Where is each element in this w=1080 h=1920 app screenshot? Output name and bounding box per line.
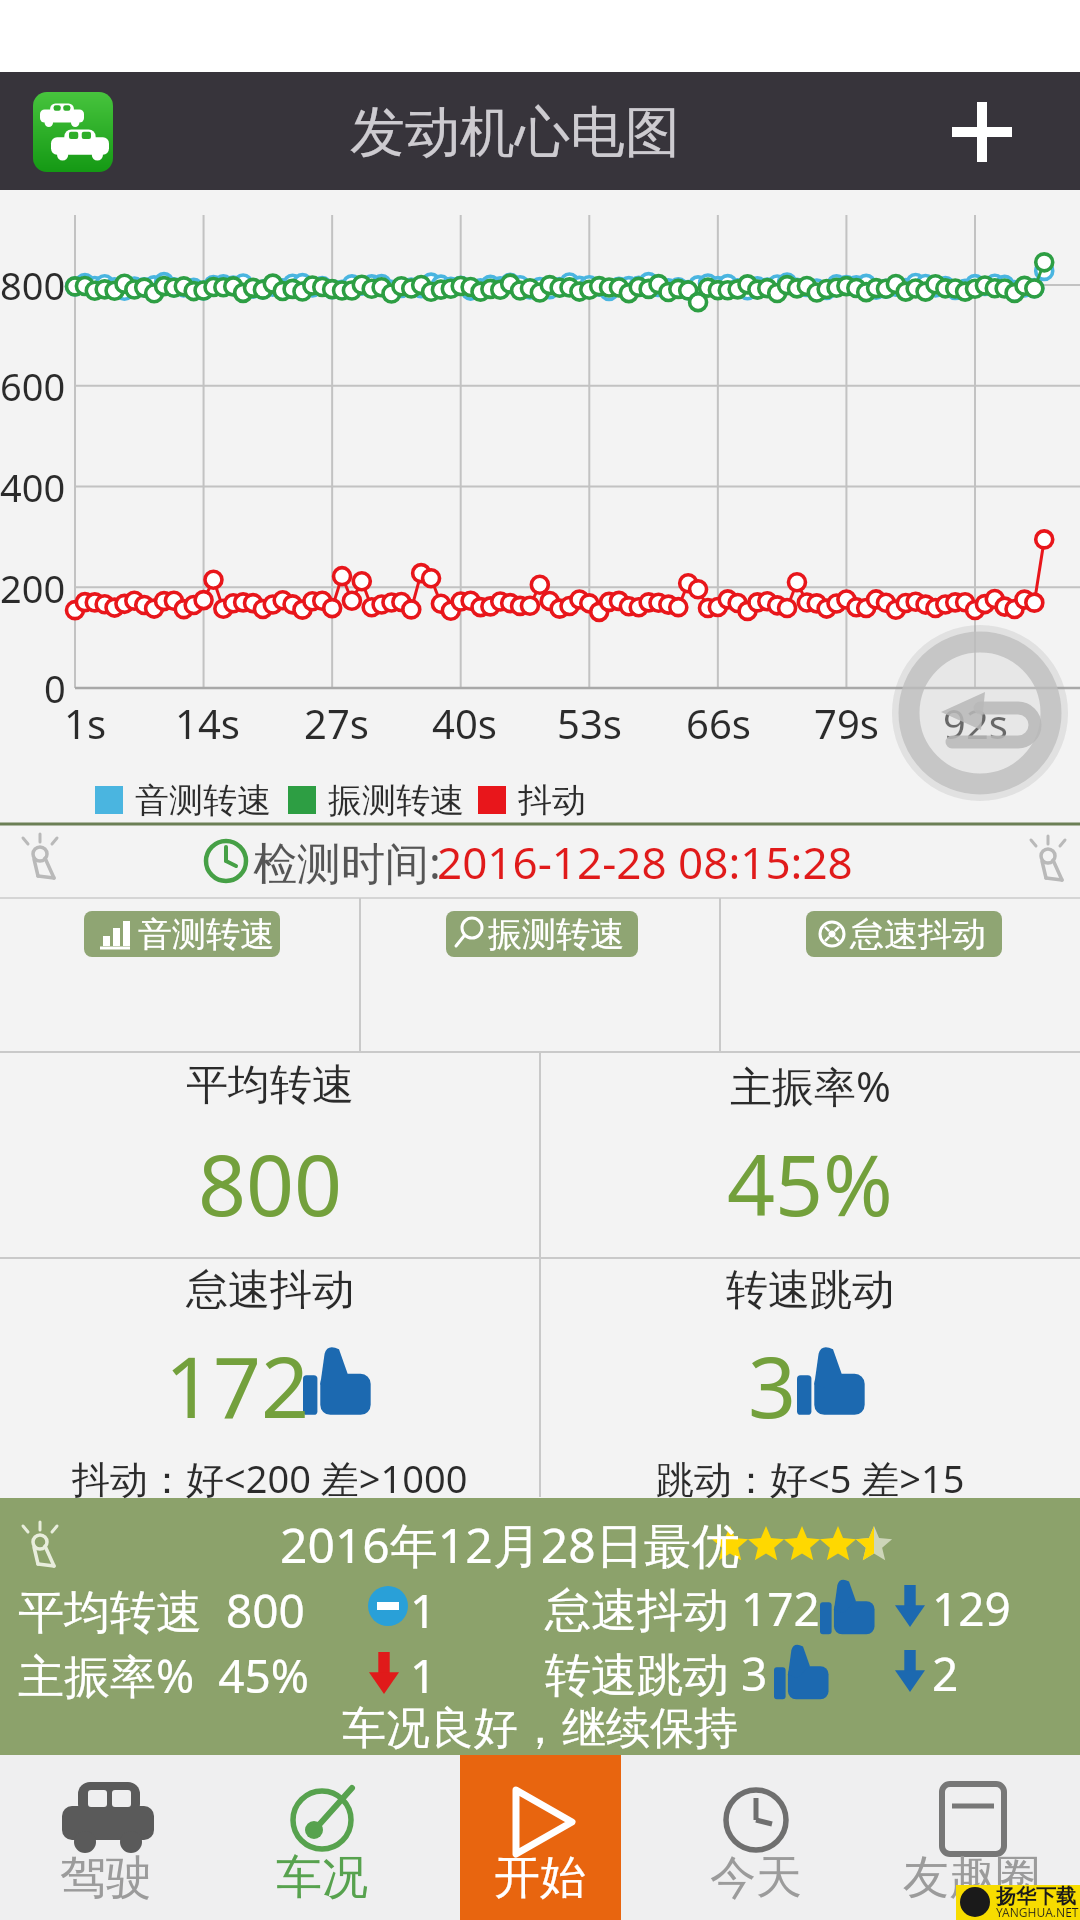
staticText: 发动机心电图: [350, 98, 680, 167]
button[interactable]: [84, 911, 280, 957]
staticText: 怠速抖动: [186, 1264, 354, 1317]
staticText: 抖动：好<200 差>1000: [72, 1452, 468, 1504]
staticText: 检测时间:: [253, 832, 441, 892]
staticText: 172: [165, 1328, 310, 1442]
button[interactable]: [900, 624, 1076, 800]
staticText: 40s: [432, 696, 497, 750]
staticText: 怠速抖动: [850, 913, 986, 956]
button[interactable]: [460, 1755, 621, 1920]
button[interactable]: [33, 92, 113, 172]
staticText: 53s: [557, 696, 622, 750]
staticText: 1: [410, 1644, 437, 1707]
staticText: 音测转速: [135, 779, 271, 822]
staticText: 3: [748, 1328, 797, 1442]
staticText: 开始: [494, 1849, 586, 1907]
staticText: 400: [0, 461, 66, 513]
staticText: 振测转速: [488, 913, 624, 956]
button[interactable]: [940, 90, 1024, 174]
staticText: 振测转速: [328, 779, 464, 822]
staticText: 驾驶: [60, 1849, 152, 1907]
staticText: YANGHUA.NET: [996, 1904, 1079, 1920]
staticText: 45%: [727, 1126, 893, 1240]
staticText: 音测转速: [138, 913, 274, 956]
staticText: 友趣圈: [903, 1849, 1041, 1907]
staticText: 2016-12-28 08:15:28: [437, 832, 853, 892]
staticText: 转速跳动 3: [545, 1642, 768, 1705]
staticText: 车况: [276, 1849, 368, 1907]
staticText: 主振率%: [730, 1057, 891, 1114]
button[interactable]: [0, 1755, 216, 1920]
staticText: 转速跳动: [726, 1264, 894, 1317]
staticText: 800: [0, 259, 66, 311]
button[interactable]: [806, 911, 1002, 957]
staticText: 600: [0, 360, 66, 412]
staticText: 0: [44, 662, 66, 714]
staticText: 200: [0, 562, 66, 614]
staticText: 2: [932, 1642, 959, 1705]
staticText: 800: [198, 1126, 343, 1240]
staticText: 今天: [710, 1849, 802, 1907]
button[interactable]: [446, 911, 638, 957]
staticText: 1s: [64, 696, 107, 750]
staticText: 主振率% 45%: [18, 1644, 309, 1707]
staticText: 扬华下载: [996, 1884, 1076, 1909]
staticText: 抖动: [518, 779, 586, 822]
staticText: 跳动：好<5 差>15: [656, 1452, 965, 1504]
staticText: 92s: [943, 696, 1008, 750]
button[interactable]: [864, 1755, 1080, 1920]
staticText: 平均转速: [186, 1059, 354, 1112]
staticText: 2016年12月28日最优: [280, 1512, 740, 1578]
staticText: 平均转速 800: [18, 1579, 305, 1642]
staticText: 27s: [304, 696, 369, 750]
staticText: 14s: [175, 696, 240, 750]
staticText: 1: [410, 1579, 437, 1642]
staticText: 车况良好，继续保持: [342, 1701, 738, 1756]
staticText: 79s: [814, 696, 879, 750]
staticText: 66s: [686, 696, 751, 750]
button[interactable]: [216, 1755, 432, 1920]
staticText: 怠速抖动 172: [545, 1577, 820, 1640]
staticText: 129: [932, 1577, 1011, 1640]
button[interactable]: [648, 1755, 864, 1920]
